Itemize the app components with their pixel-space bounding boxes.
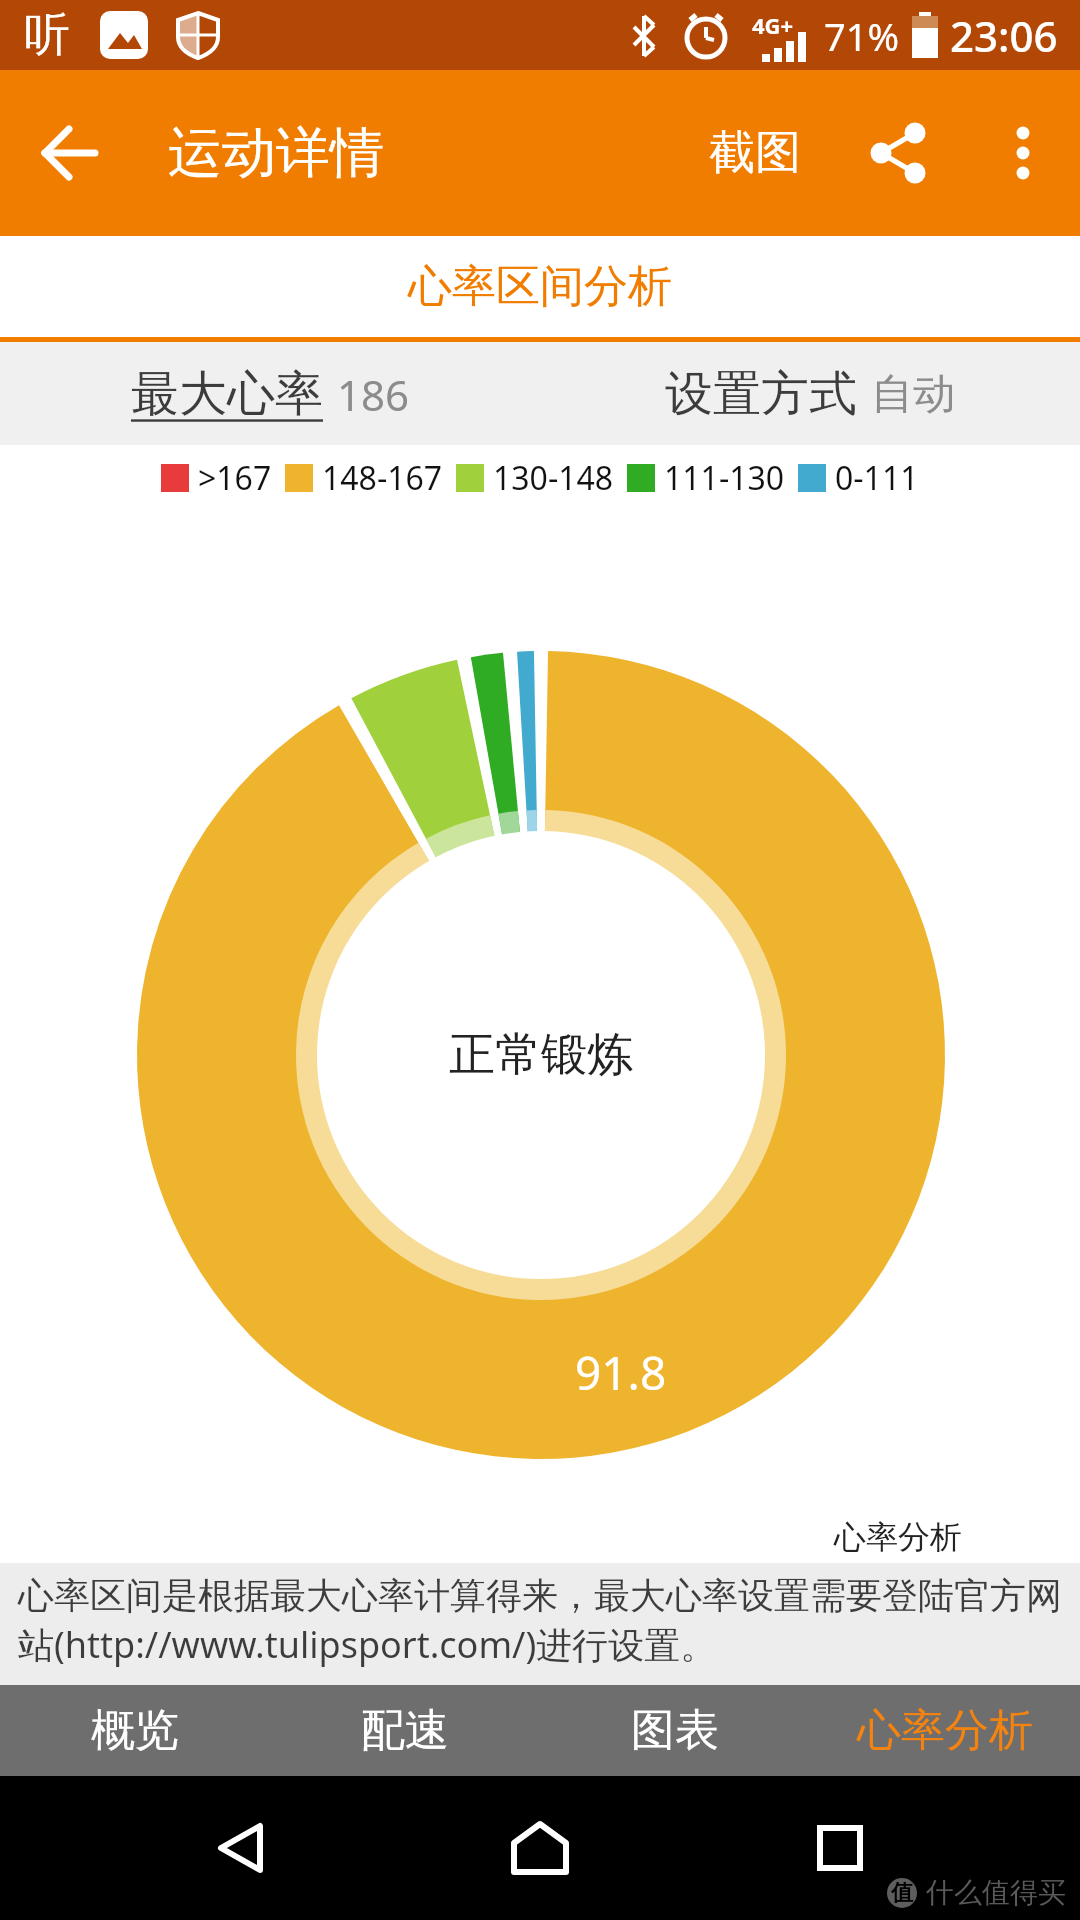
- staticText: 心率分析: [834, 1517, 962, 1557]
- staticText: 91.8: [575, 1341, 667, 1404]
- button[interactable]: [690, 1776, 990, 1920]
- staticText: 概览: [91, 1703, 179, 1758]
- staticText: 心率分析: [857, 1703, 1033, 1758]
- button[interactable]: 心率分析: [810, 1685, 1080, 1776]
- staticText: 运动详情: [168, 119, 384, 187]
- staticText: 配速: [361, 1703, 449, 1758]
- button[interactable]: [390, 1776, 690, 1920]
- staticText: 正常锻炼: [449, 1026, 633, 1084]
- button[interactable]: 配速: [270, 1685, 540, 1776]
- staticText: 0-111: [835, 456, 919, 500]
- staticText: 23:06: [950, 7, 1058, 64]
- staticText: 站(http://www.tulipsport.com/)进行设置。: [18, 1620, 717, 1669]
- staticText: >167: [198, 456, 272, 500]
- staticText: 111-130: [664, 456, 785, 500]
- staticText: 自动: [871, 368, 955, 421]
- staticText: 186: [337, 366, 410, 423]
- staticText: 最大心率: [131, 364, 323, 424]
- staticText: 值: [891, 1879, 913, 1907]
- staticText: 截图: [709, 124, 801, 182]
- staticText: 71%: [824, 10, 900, 62]
- button[interactable]: [90, 1776, 390, 1920]
- staticText: 什么值得买: [926, 1875, 1066, 1910]
- button[interactable]: 图表: [540, 1685, 810, 1776]
- staticText: 设置方式: [665, 364, 857, 424]
- button[interactable]: [830, 70, 966, 236]
- button[interactable]: 概览: [0, 1685, 270, 1776]
- button[interactable]: [0, 70, 140, 236]
- staticText: 148-167: [322, 456, 443, 500]
- staticText: 130-148: [493, 456, 614, 500]
- button[interactable]: [966, 70, 1080, 236]
- staticText: 听: [24, 6, 70, 64]
- staticText: 图表: [631, 1703, 719, 1758]
- button[interactable]: 截图: [680, 70, 830, 236]
- staticText: 心率区间分析: [408, 259, 672, 314]
- staticText: 4G+: [752, 10, 794, 40]
- staticText: 心率区间是根据最大心率计算得来，最大心率设置需要登陆官方网: [18, 1573, 1062, 1618]
